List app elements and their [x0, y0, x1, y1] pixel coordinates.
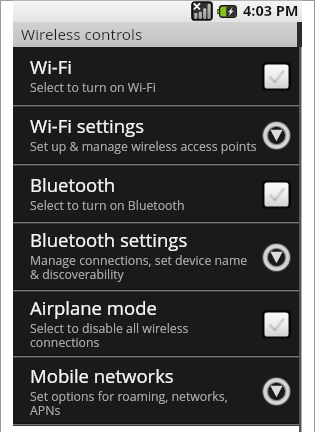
button[interactable]: Toggle — [262, 310, 291, 339]
button[interactable]: Open settings — [262, 243, 291, 272]
button[interactable]: Airplane mode — [13, 291, 302, 357]
staticText: Wi-Fi settings — [30, 113, 145, 138]
button[interactable]: Wi-Fi settings — [13, 106, 302, 165]
staticText: Airplane mode — [30, 295, 157, 320]
staticText: Manage connections, set device name & di… — [30, 252, 248, 283]
button[interactable]: Mobile networks — [13, 357, 302, 425]
staticText: Wireless controls — [21, 24, 143, 45]
button[interactable]: Bluetooth — [13, 165, 302, 223]
staticText: Select to turn on Wi-Fi — [30, 79, 156, 96]
button[interactable]: Toggle — [262, 62, 291, 91]
button[interactable]: Wi-Fi — [13, 47, 302, 106]
staticText: Set up & manage wireless access points — [30, 138, 257, 155]
staticText: Select to disable all wireless connectio… — [30, 320, 189, 351]
staticText: Bluetooth settings — [30, 227, 188, 252]
staticText: Set options for roaming, networks, APNs — [30, 388, 228, 419]
button[interactable]: Open settings — [262, 377, 291, 406]
staticText: Select to turn on Bluetooth — [30, 197, 185, 214]
staticText: 4:03 PM — [243, 1, 299, 21]
staticText: Mobile networks — [30, 363, 174, 388]
button[interactable]: Bluetooth settings — [13, 223, 302, 291]
button[interactable]: Toggle — [262, 180, 291, 209]
button[interactable]: Open settings — [262, 121, 291, 150]
staticText: Bluetooth — [30, 172, 116, 197]
staticText: Wi-Fi — [30, 54, 72, 79]
